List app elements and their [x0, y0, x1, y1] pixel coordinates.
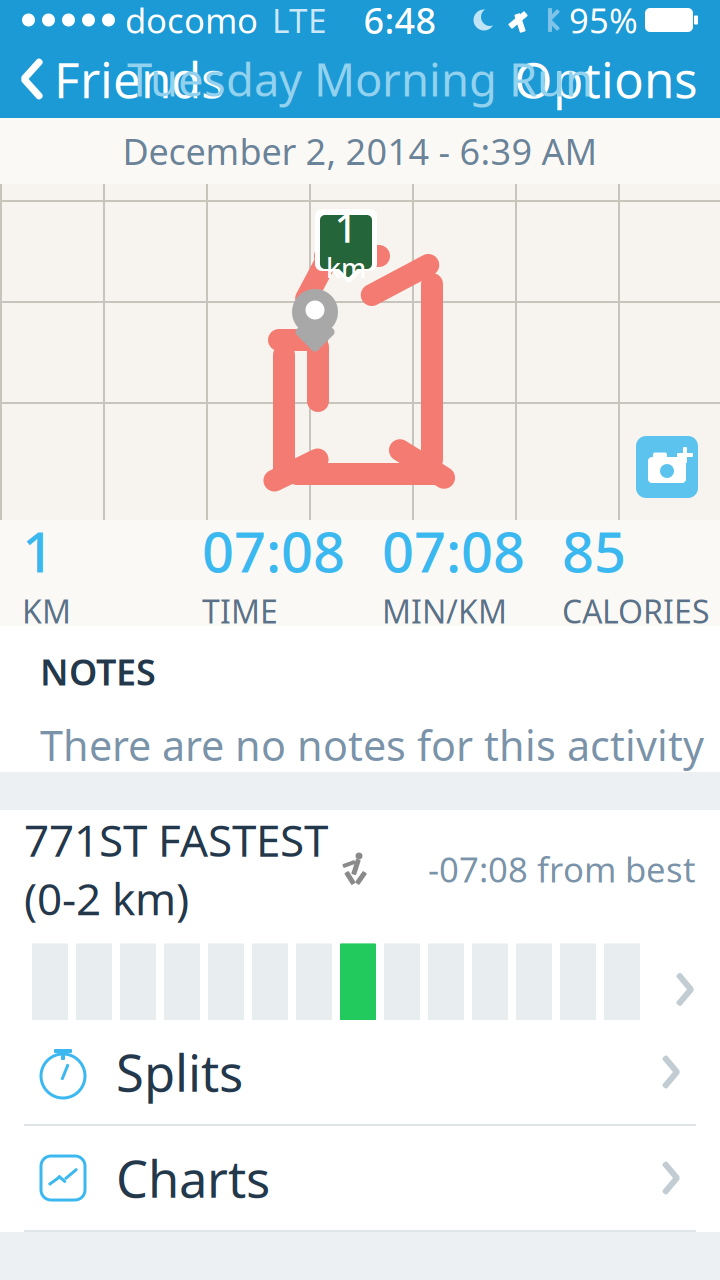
staticText: CALORIES	[562, 590, 710, 632]
staticText: km	[326, 250, 366, 285]
staticText: -07:08 from best	[428, 846, 696, 892]
staticText: Splits	[116, 1038, 243, 1106]
staticText: MIN/KM	[382, 590, 507, 632]
staticText: Tuesday Morning Run	[127, 49, 593, 109]
button[interactable]: 771ST FASTEST (0-2 km)	[0, 810, 720, 1020]
button[interactable]: Add photo	[636, 436, 698, 498]
button[interactable]: Splits	[0, 1020, 720, 1126]
staticText: There are no notes for this activity	[40, 717, 704, 772]
staticText: Charts	[116, 1144, 270, 1212]
staticText: 6:48	[363, 0, 436, 44]
staticText: Options	[514, 46, 698, 112]
staticText: TIME	[202, 590, 278, 632]
staticText: December 2, 2014 - 6:39 AM	[122, 127, 597, 175]
staticText: 771ST FASTEST (0-2 km)	[24, 811, 328, 927]
button[interactable]: Friends	[0, 40, 245, 118]
staticText: 07:08	[202, 514, 345, 588]
staticText: 85	[562, 514, 626, 588]
staticText: 1	[334, 201, 357, 254]
staticText: docomo	[125, 0, 258, 43]
staticText: LTE	[272, 0, 327, 42]
staticText: KM	[22, 590, 71, 632]
staticText: NOTES	[40, 648, 156, 695]
button[interactable]: Options	[492, 40, 720, 118]
button[interactable]: Charts	[0, 1126, 720, 1232]
staticText: 95%	[569, 0, 638, 43]
staticText: 07:08	[382, 514, 525, 588]
staticText: Friends	[54, 46, 225, 112]
staticText: 1	[22, 514, 54, 588]
